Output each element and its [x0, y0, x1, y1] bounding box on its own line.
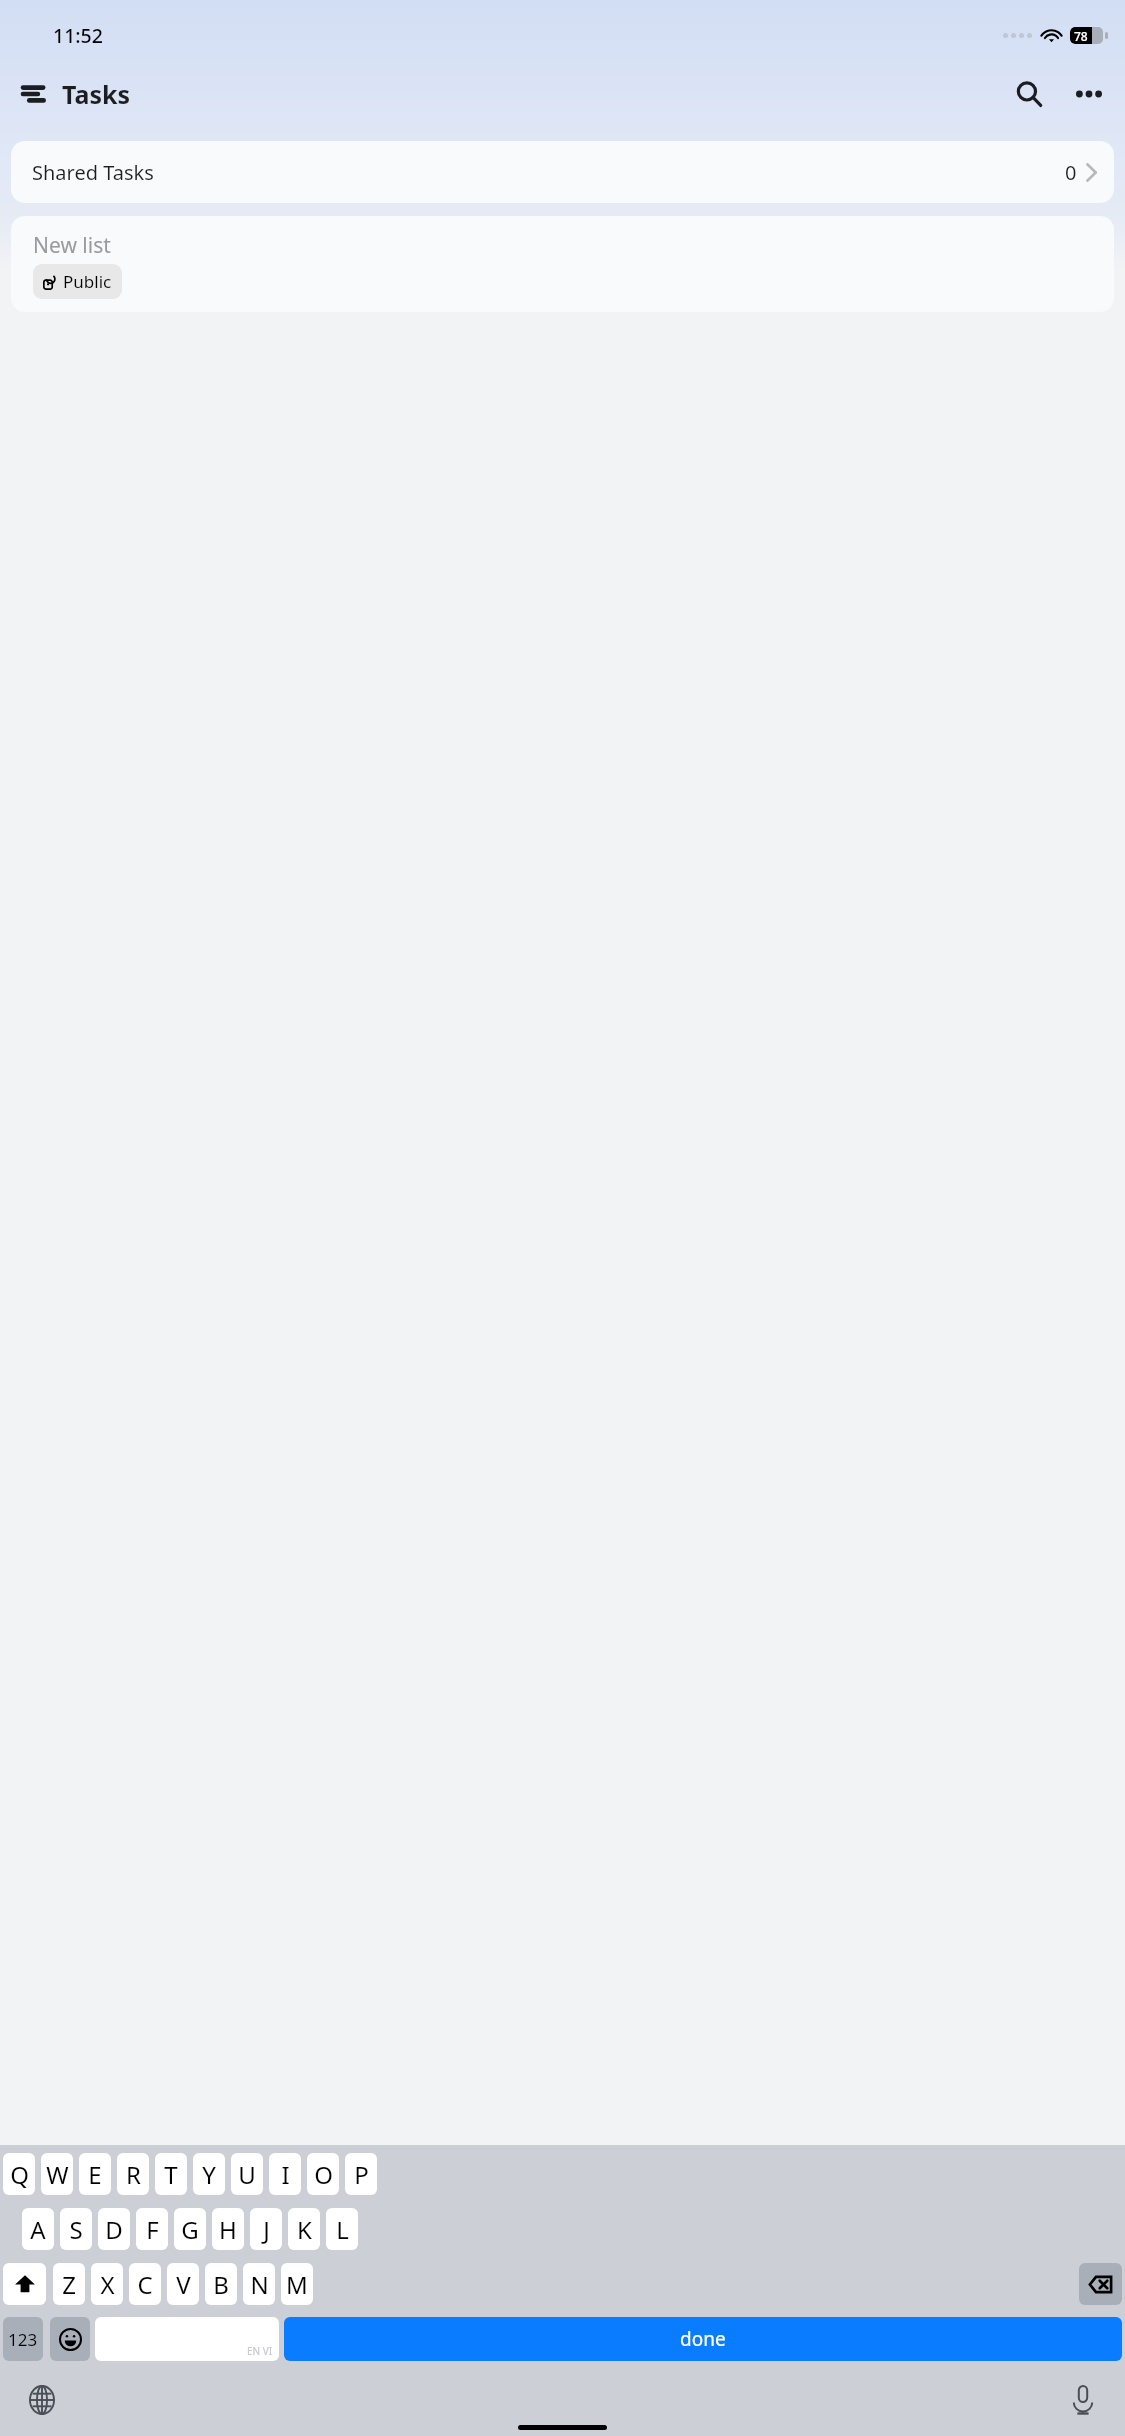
button[interactable]: Dictation	[1061, 2381, 1105, 2419]
button[interactable]: Space	[95, 2317, 279, 2361]
staticText: 123	[8, 2328, 38, 2351]
button[interactable]: Search	[1005, 70, 1053, 118]
button[interactable]: D	[98, 2208, 130, 2250]
button[interactable]: A	[22, 2208, 54, 2250]
button[interactable]: R	[117, 2153, 149, 2195]
button[interactable]: Q	[3, 2153, 35, 2195]
staticText: 11:52	[53, 22, 103, 49]
button[interactable]: L	[326, 2208, 358, 2250]
staticText: D	[105, 2213, 123, 2246]
staticText: F	[146, 2213, 159, 2246]
staticText: O	[314, 2158, 333, 2191]
button[interactable]: M	[281, 2263, 313, 2305]
staticText: P	[354, 2158, 369, 2191]
staticText: H	[219, 2213, 237, 2246]
button[interactable]: K	[288, 2208, 320, 2250]
button[interactable]: P	[345, 2153, 377, 2195]
staticText: 78	[1074, 28, 1088, 44]
staticText: done	[680, 2326, 726, 2352]
staticText: C	[137, 2268, 153, 2301]
button[interactable]: Emoji	[50, 2317, 90, 2361]
staticText: Public	[63, 270, 112, 293]
button[interactable]: Shift	[3, 2263, 46, 2305]
button[interactable]: Public	[33, 264, 122, 299]
staticText: G	[181, 2213, 199, 2246]
button[interactable]: G	[174, 2208, 206, 2250]
staticText: Q	[10, 2158, 29, 2191]
button[interactable]: J	[250, 2208, 282, 2250]
staticText: E	[88, 2158, 102, 2191]
staticText: L	[336, 2213, 349, 2246]
staticText: I	[281, 2158, 290, 2191]
button[interactable]: T	[155, 2153, 187, 2195]
staticText: J	[263, 2213, 270, 2246]
button[interactable]: U	[231, 2153, 263, 2195]
button[interactable]: done	[284, 2317, 1122, 2361]
staticText: K	[297, 2213, 312, 2246]
button[interactable]: I	[269, 2153, 301, 2195]
staticText: R	[126, 2158, 141, 2191]
staticText: T	[164, 2158, 178, 2191]
button[interactable]: Y	[193, 2153, 225, 2195]
button[interactable]: H	[212, 2208, 244, 2250]
button[interactable]: Change keyboard	[20, 2381, 64, 2419]
button[interactable]: O	[307, 2153, 339, 2195]
staticText: New list	[33, 231, 111, 260]
button[interactable]: New list	[11, 216, 1114, 312]
button[interactable]: Shared Tasks	[11, 141, 1114, 203]
staticText: A	[30, 2213, 46, 2246]
staticText: S	[69, 2213, 83, 2246]
staticText: EN VI	[247, 2344, 273, 2358]
button[interactable]: F	[136, 2208, 168, 2250]
button[interactable]: 123 key	[3, 2317, 43, 2361]
button[interactable]: W	[41, 2153, 73, 2195]
button[interactable]: S	[60, 2208, 92, 2250]
button[interactable]: Z	[53, 2263, 85, 2305]
staticText: W	[46, 2158, 69, 2191]
staticText: V	[176, 2268, 191, 2301]
staticText: X	[100, 2268, 115, 2301]
button[interactable]: B	[205, 2263, 237, 2305]
staticText: 0	[1065, 159, 1077, 186]
staticText: U	[238, 2158, 256, 2191]
staticText: N	[250, 2268, 269, 2301]
button[interactable]: E	[79, 2153, 111, 2195]
button[interactable]: V	[167, 2263, 199, 2305]
staticText: Tasks	[62, 77, 131, 111]
staticText: B	[213, 2268, 229, 2301]
staticText: Z	[62, 2268, 76, 2301]
staticText: Y	[202, 2158, 216, 2191]
button[interactable]: More options	[1067, 72, 1111, 116]
staticText: M	[286, 2268, 308, 2301]
button[interactable]: X	[91, 2263, 123, 2305]
button[interactable]: Backspace	[1079, 2263, 1122, 2305]
staticText: Shared Tasks	[32, 159, 154, 186]
button[interactable]: C	[129, 2263, 161, 2305]
button[interactable]: Menu	[12, 71, 58, 117]
button[interactable]: N	[243, 2263, 275, 2305]
